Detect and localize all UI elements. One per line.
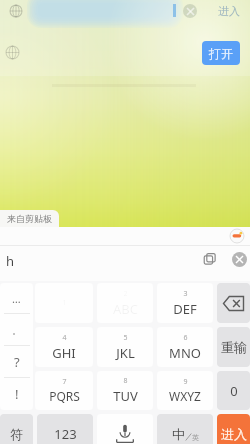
button[interactable]: 中 <box>157 414 213 444</box>
staticText: 6 <box>183 333 188 343</box>
staticText: 英 <box>192 433 199 442</box>
button[interactable]: ? <box>0 346 33 378</box>
staticText: … <box>12 291 21 306</box>
button[interactable]: 9 <box>157 371 213 410</box>
button[interactable]: 3 <box>157 283 213 323</box>
other: Backspace <box>217 283 250 323</box>
staticText: 123 <box>54 425 77 443</box>
staticText: GHI <box>52 344 76 362</box>
button[interactable]: 。 <box>0 314 33 346</box>
button[interactable]: Backspace <box>217 283 250 323</box>
button[interactable]: 进入 <box>217 414 250 444</box>
staticText: ? <box>14 353 20 371</box>
staticText: DEF <box>173 300 197 318</box>
staticText: PQRS <box>49 388 80 404</box>
staticText: 进入 <box>221 426 247 442</box>
staticText: 7 <box>62 377 67 387</box>
staticText: 8 <box>123 376 128 386</box>
button[interactable]: Close keyboard <box>232 252 247 267</box>
staticText: 打开 <box>209 46 233 61</box>
button[interactable]: 7 <box>35 371 93 410</box>
button[interactable]: ! <box>0 378 33 410</box>
staticText: ! <box>15 385 19 403</box>
staticText: 中 <box>172 426 185 442</box>
button[interactable]: Clear <box>183 4 197 18</box>
button[interactable]: Space <box>97 414 153 444</box>
button[interactable]: 8 <box>97 371 153 410</box>
button[interactable]: Candidates <box>202 251 218 267</box>
staticText: 5 <box>123 333 128 343</box>
button[interactable]: 打开 <box>202 41 240 65</box>
button[interactable]: … <box>0 283 33 314</box>
staticText: JKL <box>116 344 135 362</box>
other: Space <box>97 414 153 444</box>
button[interactable]: 进入 <box>212 0 246 21</box>
staticText: 符 <box>10 426 23 442</box>
staticText: 来自剪贴板 <box>7 213 52 224</box>
staticText: 9 <box>183 377 188 387</box>
staticText: MNO <box>169 344 201 362</box>
button[interactable]: 来自剪贴板 <box>0 210 59 227</box>
staticText: 进入 <box>218 4 240 18</box>
staticText: 。 <box>12 325 21 336</box>
staticText: 3 <box>183 289 188 299</box>
button[interactable]: 5 <box>97 327 153 367</box>
staticText: 4 <box>62 333 67 343</box>
staticText: TUV <box>113 387 138 405</box>
button[interactable]: 123 <box>37 414 93 444</box>
button[interactable]: 4 <box>35 327 93 367</box>
button[interactable]: 6 <box>157 327 213 367</box>
button[interactable]: 0 <box>217 371 250 410</box>
staticText: h <box>6 252 15 270</box>
button[interactable]: 重输 <box>217 327 250 367</box>
staticText: 0 <box>230 382 238 400</box>
staticText: ABC <box>113 300 138 318</box>
staticText: 重输 <box>221 339 247 355</box>
staticText: WXYZ <box>169 388 201 404</box>
button[interactable]: 符 <box>0 414 33 444</box>
